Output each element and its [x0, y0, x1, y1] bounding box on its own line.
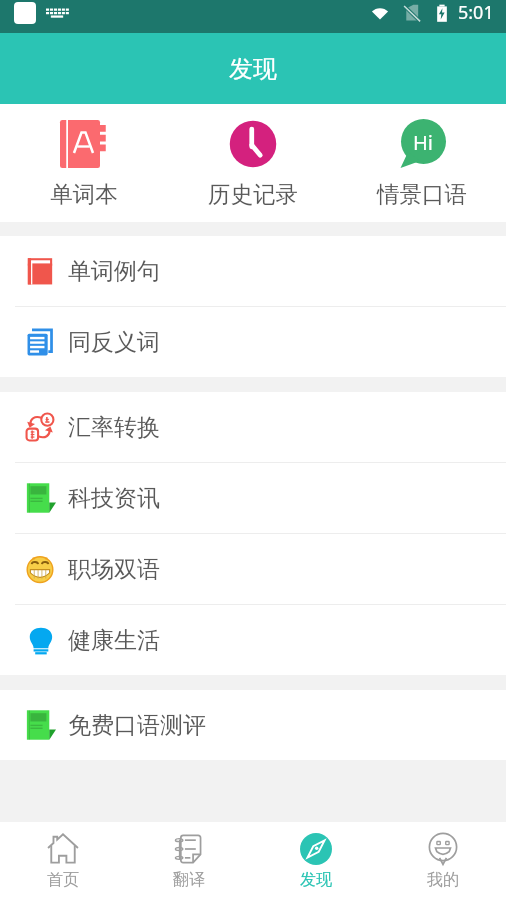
other: 我的	[426, 832, 460, 866]
button[interactable]: 科技资讯	[0, 463, 506, 533]
button[interactable]: 首页	[0, 824, 126, 898]
staticText: 历史记录	[208, 180, 298, 208]
other: 发现	[299, 832, 333, 866]
button[interactable]: 我的	[379, 824, 506, 898]
staticText: 汇率转换	[68, 413, 160, 442]
staticText: 首页	[47, 870, 79, 890]
button[interactable]: 单词例句	[0, 236, 506, 306]
button[interactable]: 同反义词	[0, 307, 506, 377]
button[interactable]: 翻译	[126, 824, 252, 898]
staticText: 职场双语	[68, 555, 160, 584]
staticText: 我的	[427, 870, 459, 890]
staticText: Hi	[413, 129, 433, 156]
staticText: 发现	[300, 870, 332, 890]
button[interactable]: 发现	[252, 824, 379, 898]
staticText: 同反义词	[68, 328, 160, 357]
staticText: 免费口语测评	[68, 711, 206, 740]
staticText: 情景口语	[377, 180, 467, 208]
staticText: 科技资讯	[68, 484, 160, 513]
button[interactable]: 健康生活	[0, 605, 506, 675]
button[interactable]: 单词本	[0, 111, 168, 216]
button[interactable]: 历史记录	[168, 111, 337, 216]
staticText: 5:01	[458, 0, 494, 25]
button[interactable]: 职场双语	[0, 534, 506, 604]
staticText: 发现	[229, 54, 277, 84]
other: 首页	[46, 832, 80, 866]
staticText: 翻译	[173, 870, 205, 890]
staticText: 单词本	[50, 180, 118, 208]
staticText: 单词例句	[68, 257, 160, 286]
other: 翻译	[172, 832, 206, 866]
staticText: 健康生活	[68, 626, 160, 655]
button[interactable]: 汇率转换	[0, 392, 506, 462]
button[interactable]: Hi	[337, 111, 506, 216]
button[interactable]: 免费口语测评	[0, 690, 506, 760]
